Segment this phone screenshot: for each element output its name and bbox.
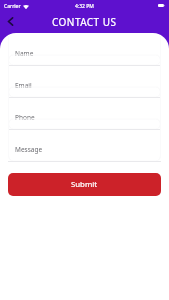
staticText: 4:32 PM (75, 3, 94, 10)
staticText: Email (15, 81, 32, 90)
staticText: Name (15, 49, 34, 58)
staticText: CONTACT US (52, 15, 117, 29)
button[interactable]: Message (8, 130, 161, 162)
button[interactable]: Name (8, 34, 161, 66)
staticText: Phone (15, 113, 35, 122)
button[interactable]: Submit (8, 173, 161, 196)
staticText: Submit (71, 179, 98, 190)
staticText: Carrier (4, 3, 21, 10)
button[interactable]: Back (3, 14, 18, 29)
button[interactable]: Phone (8, 98, 161, 130)
staticText: Message (15, 145, 43, 154)
button[interactable]: Email (8, 66, 161, 98)
